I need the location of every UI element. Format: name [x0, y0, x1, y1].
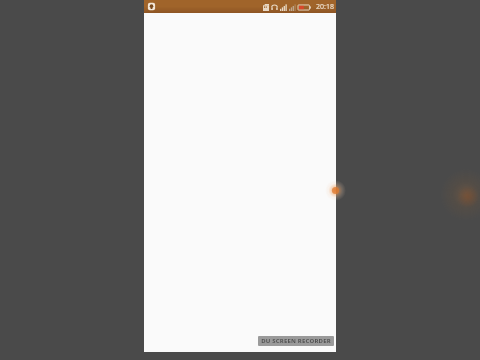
- staticText: 20:18: [316, 2, 334, 12]
- button[interactable]: Screen recorder floating button: [325, 180, 346, 201]
- staticText: DU SCREEN RECORDER: [261, 337, 331, 345]
